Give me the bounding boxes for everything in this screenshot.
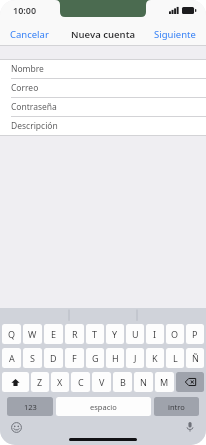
button[interactable]: P — [186, 324, 204, 344]
staticText: U — [132, 328, 139, 340]
button[interactable]: Borrar — [176, 372, 204, 392]
staticText: Q — [8, 328, 16, 340]
button[interactable]: S — [23, 348, 42, 368]
staticText: K — [152, 352, 158, 364]
button[interactable]: Nombre — [0, 60, 206, 79]
button[interactable]: H — [106, 348, 124, 368]
staticText: intro — [168, 402, 185, 412]
staticText: H — [112, 352, 119, 364]
staticText: B — [120, 376, 126, 388]
button[interactable]: T — [86, 324, 104, 344]
staticText: Correo — [11, 82, 39, 94]
staticText: O — [171, 328, 179, 340]
button[interactable]: 123 — [7, 397, 53, 416]
staticText: J — [134, 352, 137, 364]
staticText: espacio — [90, 402, 117, 412]
button[interactable]: Emoji — [9, 420, 23, 434]
staticText: Z — [37, 376, 43, 388]
staticText: Cancelar — [10, 28, 49, 41]
button[interactable]: L — [166, 348, 184, 368]
button[interactable]: M — [155, 372, 174, 392]
staticText: L — [173, 352, 178, 364]
staticText: X — [57, 376, 63, 388]
staticText: M — [160, 376, 169, 388]
staticText: S — [30, 352, 35, 364]
button[interactable]: O — [166, 324, 184, 344]
button[interactable]: Y — [106, 324, 124, 344]
staticText: P — [192, 328, 198, 340]
button[interactable]: Ñ — [186, 348, 204, 368]
button[interactable]: G — [86, 348, 104, 368]
button[interactable]: U — [126, 324, 144, 344]
staticText: F — [72, 352, 77, 364]
button[interactable]: J — [126, 348, 144, 368]
staticText: 123 — [24, 402, 37, 412]
button[interactable]: Siguiente — [144, 23, 206, 46]
button[interactable]: Mayúsculas — [2, 372, 29, 392]
button[interactable]: V — [92, 372, 111, 392]
staticText: D — [50, 352, 57, 364]
button[interactable]: espacio — [56, 397, 151, 416]
staticText: 10:00 — [13, 4, 37, 16]
button[interactable]: N — [134, 372, 153, 392]
staticText: N — [140, 376, 147, 388]
button[interactable]: X — [51, 372, 69, 392]
staticText: Ñ — [192, 352, 199, 364]
staticText: Nombre — [11, 63, 44, 75]
button[interactable]: Contraseña — [0, 98, 206, 117]
staticText: A — [9, 352, 15, 364]
staticText: C — [78, 376, 84, 388]
button[interactable]: A — [2, 348, 21, 368]
button[interactable]: I — [146, 324, 164, 344]
staticText: T — [92, 328, 98, 340]
staticText: Y — [112, 328, 118, 340]
button[interactable]: Cancelar — [0, 23, 59, 46]
staticText: I — [153, 328, 157, 340]
staticText: Contraseña — [11, 101, 57, 113]
button[interactable]: D — [44, 348, 63, 368]
button[interactable]: K — [146, 348, 164, 368]
button[interactable]: E — [44, 324, 63, 344]
staticText: Descripción — [11, 120, 58, 132]
button[interactable]: Z — [31, 372, 49, 392]
staticText: R — [72, 328, 78, 340]
button[interactable]: Descripción — [0, 117, 206, 135]
button[interactable]: W — [23, 324, 42, 344]
button[interactable]: Dictado — [183, 420, 197, 434]
button[interactable]: B — [113, 372, 132, 392]
button[interactable]: C — [71, 372, 90, 392]
button[interactable]: Q — [2, 324, 21, 344]
staticText: G — [92, 352, 99, 364]
staticText: Siguiente — [154, 28, 196, 41]
staticText: Nueva cuenta — [71, 28, 136, 41]
button[interactable]: intro — [154, 397, 199, 416]
button[interactable]: R — [65, 324, 84, 344]
button[interactable]: Correo — [0, 79, 206, 98]
staticText: W — [28, 328, 37, 340]
staticText: V — [99, 376, 105, 388]
button[interactable]: F — [65, 348, 84, 368]
staticText: E — [51, 328, 57, 340]
